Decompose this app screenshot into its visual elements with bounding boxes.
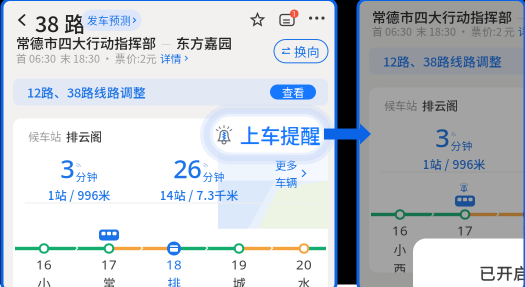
staticText: 18: [522, 221, 525, 239]
staticText: 发车预测: [87, 12, 131, 28]
staticText: 12路、38路线路调整: [383, 52, 502, 70]
staticText: 3: [60, 151, 74, 185]
staticText: 更多: [275, 156, 297, 173]
staticText: 城: [232, 273, 245, 287]
staticText: 常: [102, 273, 115, 287]
button[interactable]: Tickets: [274, 7, 300, 32]
staticText: 候车站: [384, 97, 417, 113]
button[interactable]: 发车预测: [81, 9, 142, 31]
staticText: 西: [393, 259, 406, 278]
button[interactable]: More: [303, 10, 331, 26]
staticText: 19: [231, 255, 247, 273]
staticText: 车辆: [275, 174, 297, 190]
staticText: 分钟: [76, 169, 98, 184]
button[interactable]: 首 06:30 末 18:30 · 票价:2元: [16, 50, 187, 66]
button[interactable]: 26: [139, 151, 259, 203]
staticText: 26: [173, 151, 201, 185]
staticText: 排: [167, 273, 180, 287]
staticText: 12路、38路线路调整: [27, 83, 146, 101]
staticText: 东方嘉园: [176, 32, 232, 53]
staticText: 16: [392, 221, 408, 239]
staticText: 3: [435, 120, 449, 154]
staticText: 常德市四大行动指挥部: [16, 32, 156, 53]
staticText: 小: [37, 273, 50, 287]
staticText: 查看: [282, 84, 304, 100]
button[interactable]: 更多: [275, 156, 306, 190]
staticText: —: [161, 34, 171, 51]
staticText: 换向: [294, 42, 320, 60]
staticText: 18: [166, 255, 182, 273]
staticText: 14站 / 7.3千米: [159, 186, 238, 203]
staticText: 上车提醒: [240, 120, 320, 149]
button[interactable]: Favorite: [245, 7, 270, 32]
staticText: 首 06:30 末 18:30 · 票价:2元: [16, 50, 157, 66]
button[interactable]: 上车提醒: [213, 116, 322, 152]
staticText: 首 06:30 末 18:30 · 票价:2 元: [372, 23, 515, 39]
staticText: 详情: [160, 50, 182, 66]
staticText: 小: [393, 240, 406, 258]
staticText: 已开启.: [479, 260, 525, 285]
button[interactable]: 12路、38路线路调整: [13, 78, 328, 105]
staticText: —: [517, 8, 525, 25]
staticText: 分钟: [451, 138, 473, 153]
staticText: 分钟: [203, 169, 225, 184]
staticText: 16: [36, 255, 52, 273]
staticText: 排云阁: [422, 96, 458, 114]
button[interactable]: 38 路: [35, 7, 85, 38]
staticText: 候车站: [28, 128, 61, 144]
staticText: 1站 / 996米: [47, 186, 110, 203]
staticText: 水: [297, 273, 310, 287]
staticText: 1: [292, 8, 297, 19]
staticText: 17: [457, 221, 473, 239]
button[interactable]: Back: [12, 7, 32, 32]
staticText: 详情: [518, 23, 525, 39]
staticText: 排云阁: [66, 127, 102, 145]
button[interactable]: 换向: [274, 39, 328, 63]
staticText: 1站 / 996米: [422, 155, 485, 172]
staticText: 38 路: [35, 7, 85, 38]
staticText: 常德市四大行动指挥部: [372, 6, 512, 27]
staticText: 17: [101, 255, 117, 273]
staticText: 20: [296, 255, 312, 273]
button[interactable]: 3: [19, 151, 139, 203]
